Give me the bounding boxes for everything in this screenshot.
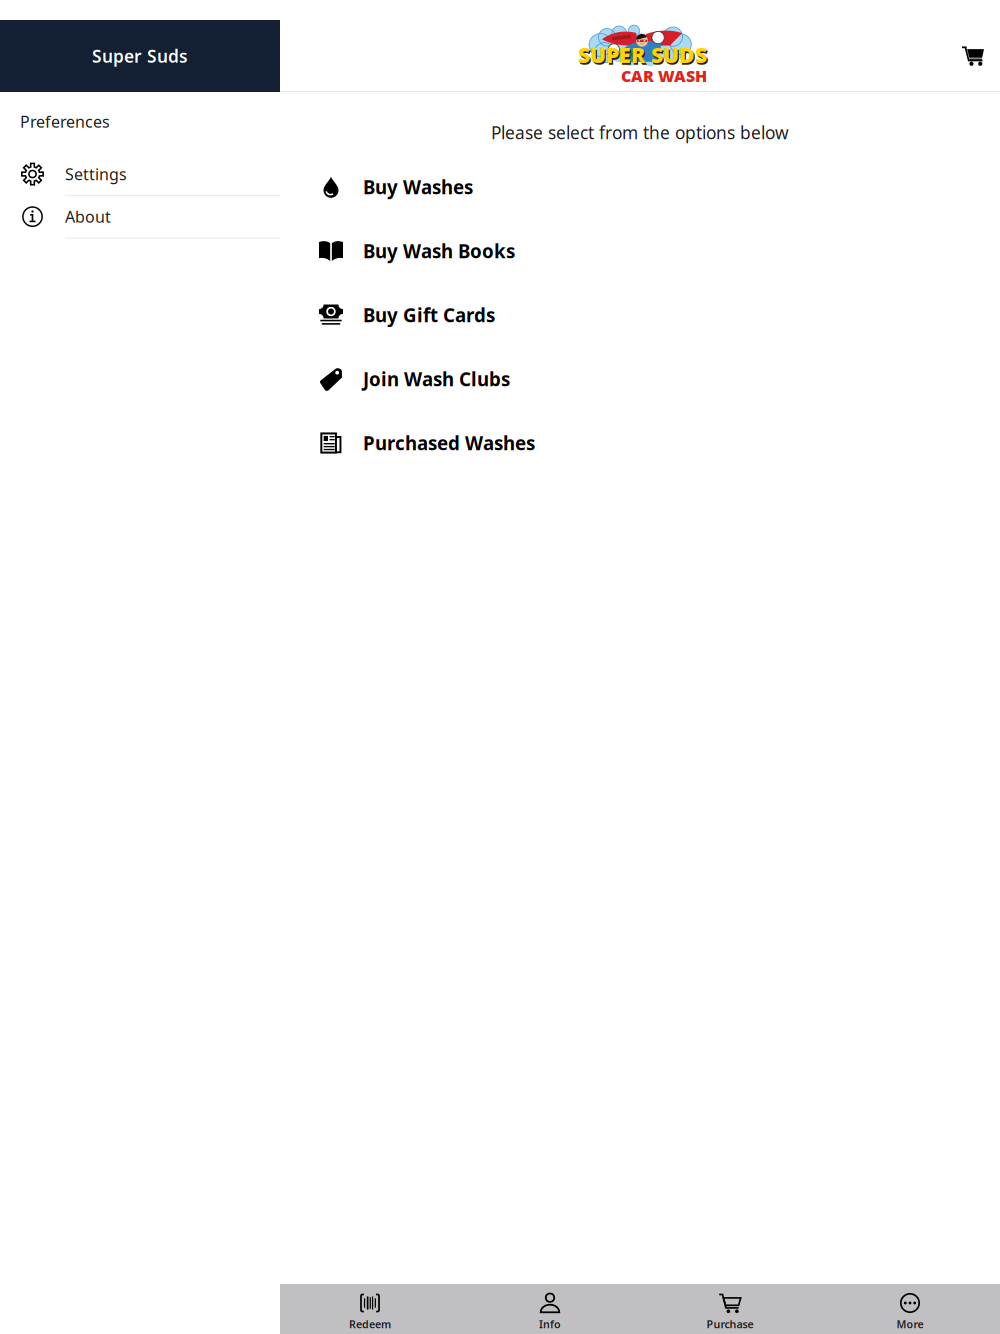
staticText: Buy Wash Books bbox=[363, 239, 515, 263]
staticText: Buy Gift Cards bbox=[363, 303, 495, 327]
button[interactable]: Purchase bbox=[640, 1284, 820, 1334]
staticText: Buy Washes bbox=[363, 175, 473, 199]
button[interactable]: Buy Washes bbox=[280, 155, 1000, 219]
button[interactable]: Purchased Washes bbox=[280, 411, 1000, 475]
staticText: Preferences bbox=[20, 111, 110, 132]
button[interactable]: Info bbox=[460, 1284, 640, 1334]
staticText: CAR WASH bbox=[621, 65, 707, 86]
staticText: Settings bbox=[65, 163, 127, 185]
button[interactable]: Redeem bbox=[280, 1284, 460, 1334]
staticText: Purchase bbox=[706, 1317, 753, 1331]
staticText: Please select from the options below bbox=[491, 121, 789, 144]
staticText: About bbox=[65, 206, 111, 227]
button[interactable]: Shopping cart bbox=[948, 20, 998, 91]
staticText: Join Wash Clubs bbox=[363, 367, 510, 391]
staticText: Super Suds bbox=[92, 44, 188, 67]
button[interactable]: Buy Wash Books bbox=[280, 219, 1000, 283]
staticText: Purchased Washes bbox=[363, 431, 535, 455]
staticText: SUPER SUDS bbox=[579, 42, 708, 71]
staticText: Info bbox=[539, 1317, 561, 1331]
button[interactable]: Buy Gift Cards bbox=[280, 283, 1000, 347]
staticText: More bbox=[896, 1317, 923, 1331]
button[interactable]: Join Wash Clubs bbox=[280, 347, 1000, 411]
staticText: Redeem bbox=[349, 1317, 391, 1331]
button[interactable]: More bbox=[820, 1284, 1000, 1334]
staticText: SUPER SUDS bbox=[578, 41, 707, 69]
button[interactable]: Settings bbox=[0, 153, 280, 196]
button[interactable]: About bbox=[0, 196, 280, 238]
